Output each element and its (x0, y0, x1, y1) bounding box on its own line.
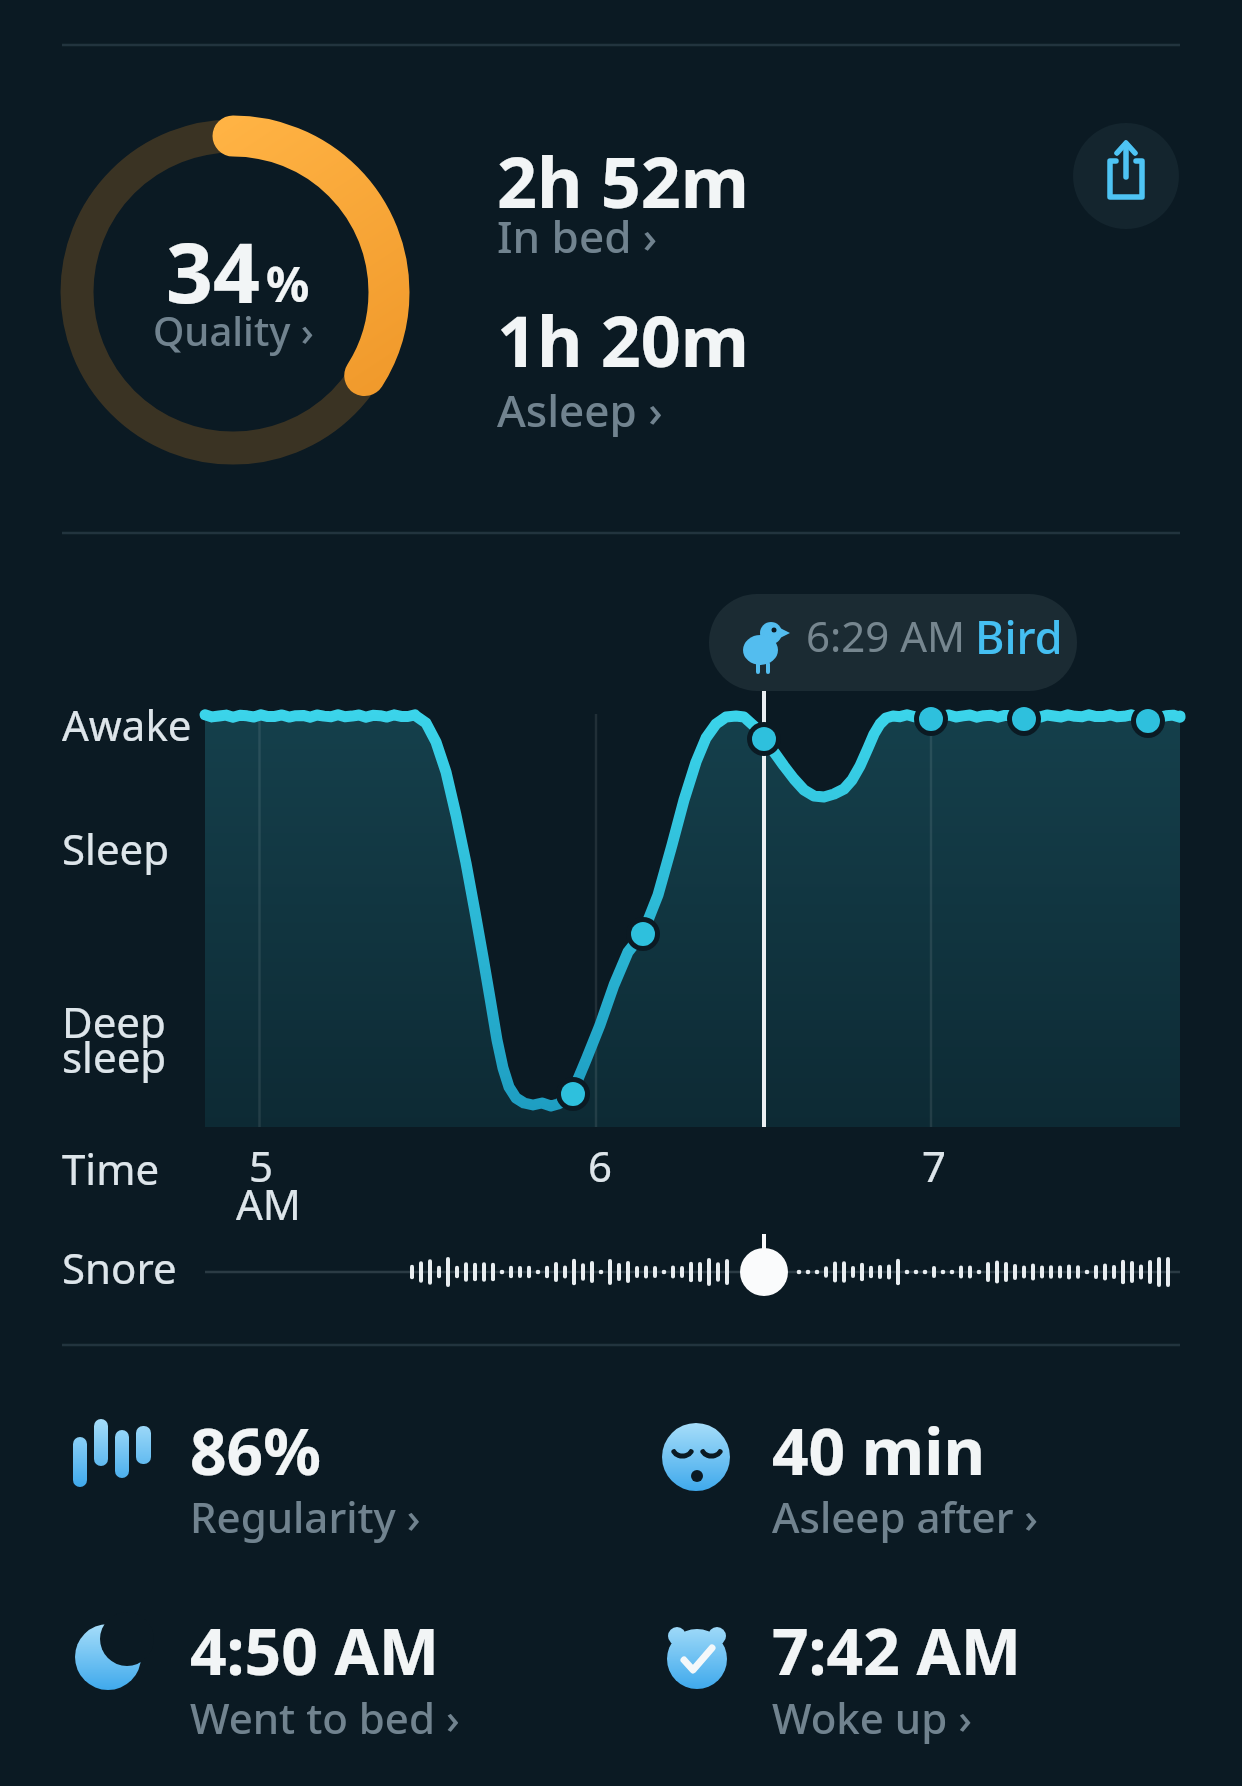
staticText: 6 (588, 1137, 613, 1194)
staticText: Snore (62, 1239, 177, 1296)
staticText: 5 (249, 1137, 274, 1194)
staticText: AM (236, 1175, 301, 1232)
staticText: 2h 52m (497, 133, 750, 228)
staticText: 7 (922, 1137, 947, 1194)
staticText: 34 (166, 215, 260, 327)
button[interactable] (640, 1400, 1140, 1560)
staticText: Time (62, 1140, 160, 1197)
staticText: Regularity › (190, 1488, 421, 1545)
button[interactable] (709, 594, 1077, 691)
button[interactable] (60, 1400, 560, 1560)
staticText: In bed › (497, 206, 658, 266)
staticText: sleep (62, 1028, 167, 1085)
button[interactable]: 1h 20m (497, 292, 750, 387)
staticText: 40 min (772, 1407, 985, 1494)
button[interactable] (60, 1600, 560, 1760)
button[interactable]: Asleep › (497, 380, 663, 440)
staticText: Bird (975, 606, 1063, 667)
button[interactable]: 34 (166, 215, 260, 327)
staticText: Woke up › (772, 1689, 972, 1746)
staticText: Asleep › (497, 380, 663, 440)
button[interactable] (1073, 123, 1179, 229)
staticText: 86% (190, 1407, 321, 1494)
staticText: Quality › (153, 303, 314, 357)
staticText: 7:42 AM (772, 1607, 1022, 1694)
button[interactable]: 2h 52m (497, 133, 750, 228)
staticText: % (266, 251, 310, 316)
staticText: Awake (62, 696, 192, 753)
staticText: Asleep after › (772, 1488, 1039, 1545)
staticText: Went to bed › (190, 1689, 460, 1746)
staticText: Deep (62, 993, 166, 1050)
staticText: 4:50 AM (190, 1607, 440, 1694)
staticText: 6:29 AM (806, 607, 966, 664)
button[interactable] (640, 1600, 1140, 1760)
staticText: Sleep (62, 820, 170, 877)
staticText: 1h 20m (497, 292, 750, 387)
button[interactable]: In bed › (497, 206, 658, 266)
